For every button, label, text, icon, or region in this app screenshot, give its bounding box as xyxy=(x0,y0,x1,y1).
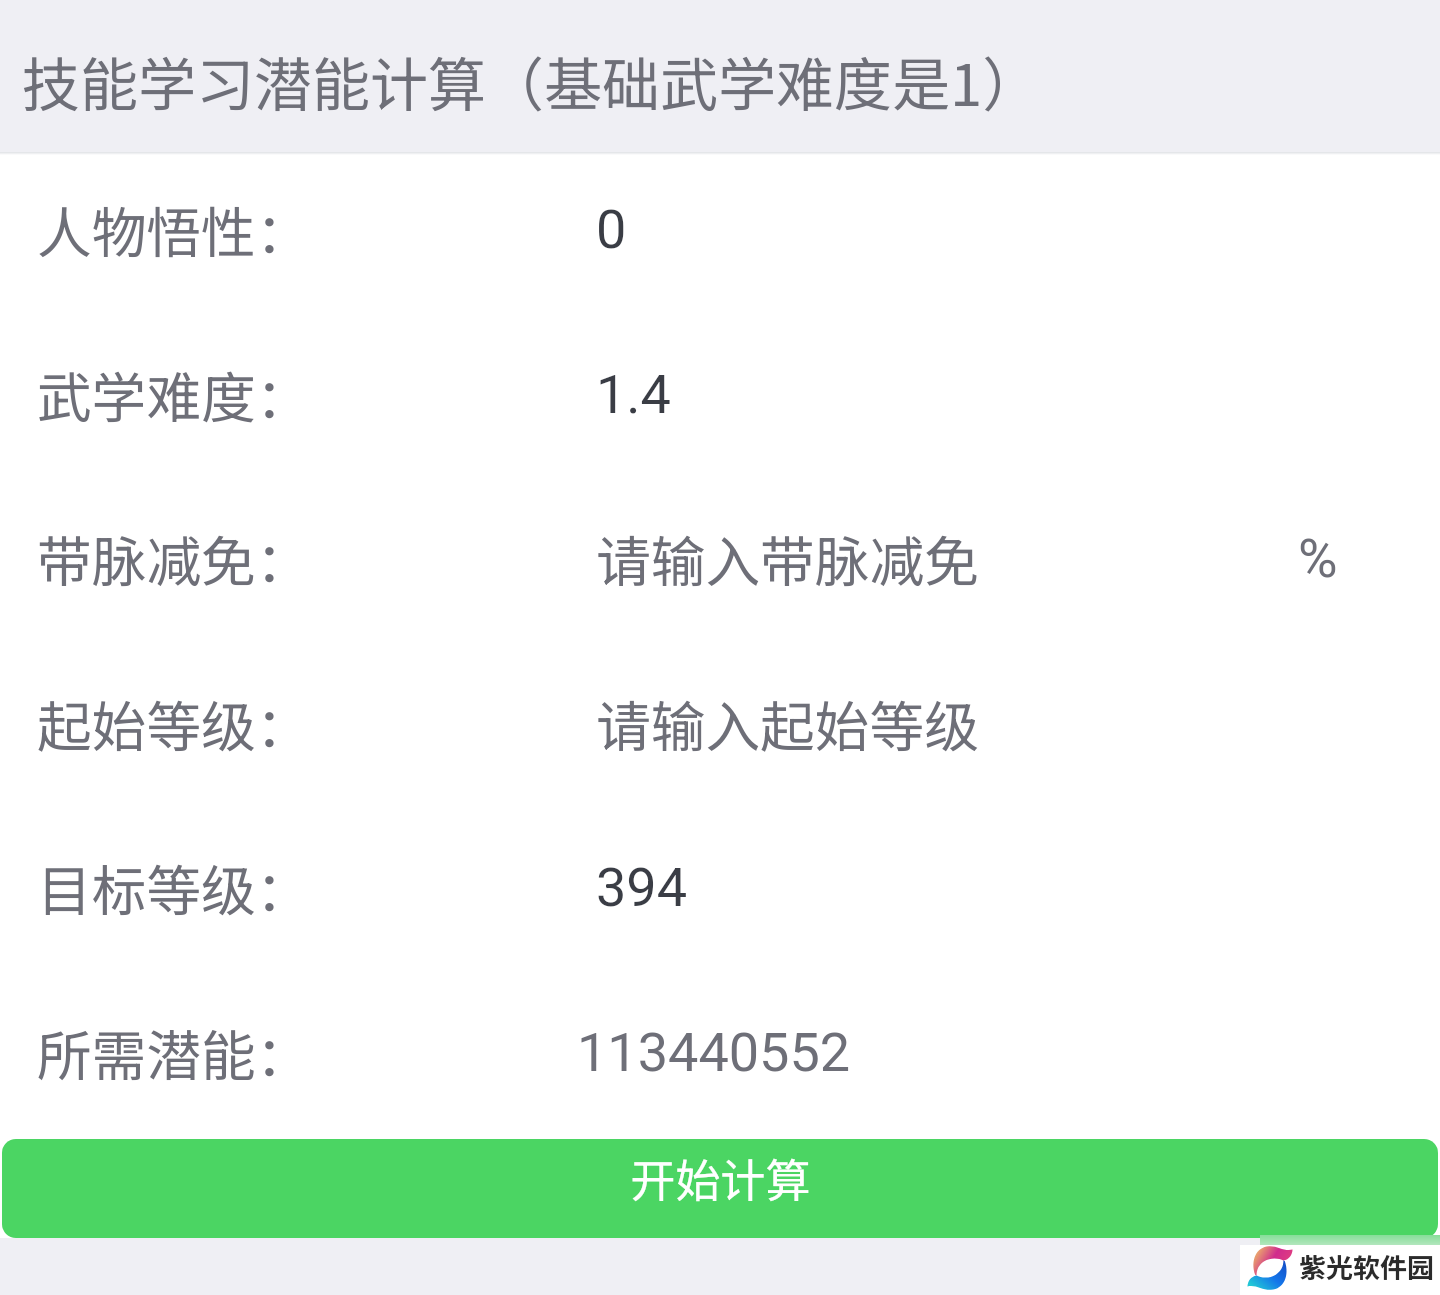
staticText: 请输入带脉减免 xyxy=(596,519,979,598)
button[interactable]: 起始等级： xyxy=(0,645,1440,810)
staticText: 0 xyxy=(596,198,627,261)
button[interactable]: 带脉减免： xyxy=(0,480,1440,645)
staticText: 开始计算 xyxy=(630,1145,811,1210)
staticText: % xyxy=(1298,527,1338,590)
staticText: 请输入起始等级 xyxy=(596,684,979,763)
staticText: 带脉减免： xyxy=(37,519,311,598)
button[interactable]: 目标等级： xyxy=(0,809,1440,974)
staticText: 武学难度： xyxy=(37,355,311,434)
staticText: 技能学习潜能计算（基础武学难度是1） xyxy=(22,39,1041,123)
staticText: 目标等级： xyxy=(37,848,311,927)
staticText: 1.4 xyxy=(596,363,671,426)
staticText: 394 xyxy=(596,856,688,919)
staticText: 紫光软件园 xyxy=(1299,1247,1434,1286)
staticText: 人物悟性： xyxy=(37,190,311,269)
button[interactable]: 所需潜能： xyxy=(0,974,1440,1139)
button[interactable]: 开始计算 xyxy=(2,1139,1438,1238)
staticText: 所需潜能： xyxy=(37,1013,311,1092)
staticText: 起始等级： xyxy=(37,684,311,763)
button[interactable]: 武学难度： xyxy=(0,316,1440,481)
staticText: 113440552 xyxy=(577,1021,851,1084)
button[interactable]: 人物悟性： xyxy=(0,151,1440,316)
